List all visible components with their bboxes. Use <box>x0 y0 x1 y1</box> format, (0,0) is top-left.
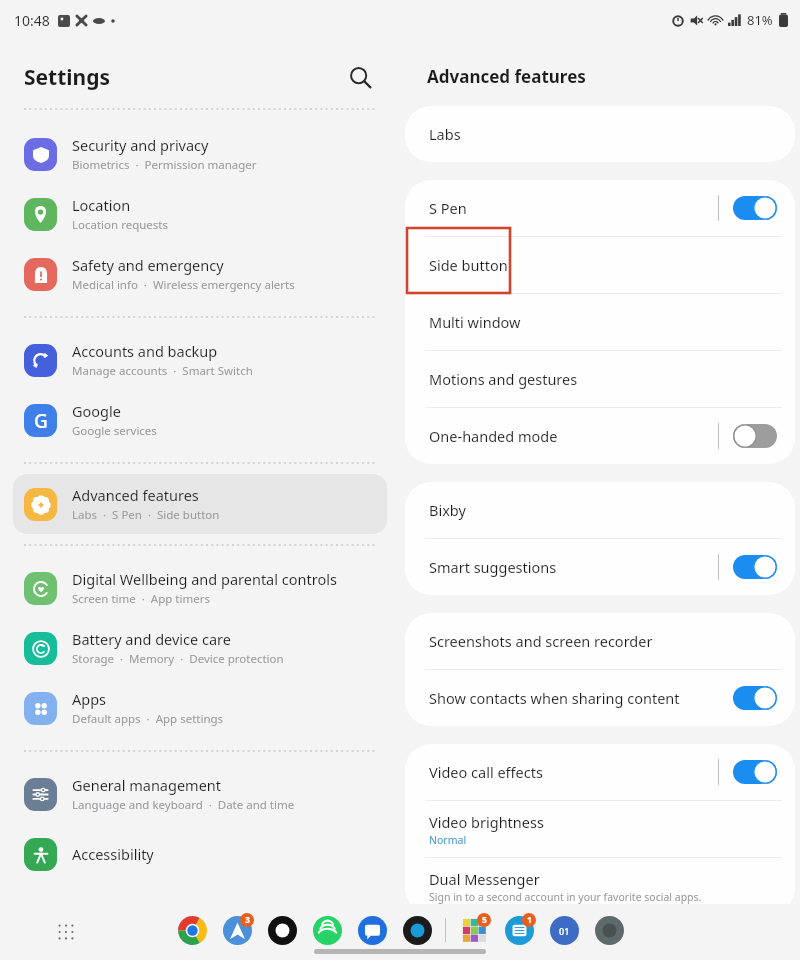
staticText: Location <box>72 195 131 215</box>
staticText: Screen time · App timers <box>72 591 210 607</box>
button[interactable]: One-handed mode <box>405 408 795 464</box>
button[interactable]: Reddit <box>265 913 299 947</box>
staticText: 81% <box>747 11 773 29</box>
button[interactable]: Camera <box>400 913 434 947</box>
staticText: Show contacts when sharing content <box>429 688 680 708</box>
staticText: Storage · Memory · Device protection <box>72 651 284 667</box>
button[interactable]: Security and privacy <box>13 124 387 184</box>
staticText: Manage accounts · Smart Switch <box>72 363 253 379</box>
button[interactable]: G <box>13 390 387 450</box>
button[interactable]: Apps <box>13 678 387 738</box>
button[interactable]: Screenshots and screen recorder <box>405 613 795 669</box>
button[interactable]: On <box>733 196 777 220</box>
button[interactable]: Labs <box>405 106 795 162</box>
staticText: Labs <box>429 124 461 144</box>
staticText: Dual Messenger <box>429 869 540 889</box>
staticText: Default apps · App settings <box>72 711 224 727</box>
button[interactable]: Accessibility <box>13 824 387 884</box>
staticText: Google services <box>72 423 157 439</box>
button[interactable]: Video call effects <box>405 744 795 800</box>
staticText: G <box>34 408 48 434</box>
button[interactable]: Digital Wellbeing and parental controls <box>13 558 387 618</box>
button[interactable]: Clock <box>547 913 581 947</box>
button[interactable]: Motions and gestures <box>405 351 795 407</box>
button[interactable]: On <box>733 686 777 710</box>
staticText: Advanced features <box>72 485 199 505</box>
button[interactable]: Spotify <box>310 913 344 947</box>
staticText: Medical info · Wireless emergency alerts <box>72 277 295 293</box>
staticText: Normal <box>429 833 467 847</box>
button[interactable]: Battery and device care <box>13 618 387 678</box>
staticText: 01 <box>559 925 570 937</box>
staticText: Bixby <box>429 500 466 520</box>
staticText: Screenshots and screen recorder <box>429 631 653 651</box>
staticText: S Pen <box>429 198 467 218</box>
staticText: Advanced features <box>427 65 586 88</box>
button[interactable]: On <box>733 555 777 579</box>
staticText: Accessibility <box>72 844 154 864</box>
staticText: 1 <box>527 914 532 926</box>
button[interactable]: Apps <box>48 914 84 950</box>
button[interactable]: Settings <box>592 913 626 947</box>
button[interactable]: Dual Messenger <box>405 858 795 914</box>
staticText: Security and privacy <box>72 135 209 155</box>
staticText: Video brightness <box>429 812 544 832</box>
button[interactable]: Navigation <box>220 913 254 947</box>
staticText: One-handed mode <box>429 426 558 446</box>
button[interactable]: On <box>733 760 777 784</box>
button[interactable]: Location <box>13 184 387 244</box>
staticText: Multi window <box>429 312 521 332</box>
button[interactable]: Bixby <box>405 482 795 538</box>
staticText: Accounts and backup <box>72 341 218 361</box>
staticText: Digital Wellbeing and parental controls <box>72 569 337 589</box>
staticText: Settings <box>24 63 111 92</box>
staticText: Safety and emergency <box>72 255 224 275</box>
staticText: Sign in to a second account in your favo… <box>429 890 702 904</box>
button[interactable]: Video brightness <box>405 801 795 857</box>
button[interactable]: Smart suggestions <box>405 539 795 595</box>
staticText: 5 <box>482 914 487 926</box>
staticText: Battery and device care <box>72 629 231 649</box>
button[interactable]: Search <box>338 55 382 99</box>
staticText: Video call effects <box>429 762 543 782</box>
button[interactable]: Accounts and backup <box>13 330 387 390</box>
button[interactable]: Safety and emergency <box>13 244 387 304</box>
button[interactable]: Side button <box>405 237 795 293</box>
button[interactable]: Show contacts when sharing content <box>405 670 795 726</box>
button[interactable]: Off <box>733 424 777 448</box>
staticText: Smart suggestions <box>429 557 557 577</box>
button[interactable]: S Pen <box>405 180 795 236</box>
staticText: 10:48 <box>14 11 50 30</box>
staticText: Language and keyboard · Date and time <box>72 797 295 813</box>
staticText: Side button <box>429 255 508 275</box>
staticText: 3 <box>245 914 250 926</box>
button[interactable]: Messages <box>355 913 389 947</box>
staticText: Apps <box>72 689 107 709</box>
staticText: Location requests <box>72 217 168 233</box>
button[interactable]: Mail <box>502 913 536 947</box>
staticText: Labs · S Pen · Side button <box>72 507 220 523</box>
button[interactable]: Gallery <box>457 913 491 947</box>
button[interactable]: Chrome <box>175 913 209 947</box>
button[interactable]: General management <box>13 764 387 824</box>
staticText: Motions and gestures <box>429 369 578 389</box>
staticText: General management <box>72 775 222 795</box>
button[interactable]: Advanced features <box>13 474 387 534</box>
staticText: Biometrics · Permission manager <box>72 157 257 173</box>
staticText: Google <box>72 401 121 421</box>
button[interactable]: Multi window <box>405 294 795 350</box>
